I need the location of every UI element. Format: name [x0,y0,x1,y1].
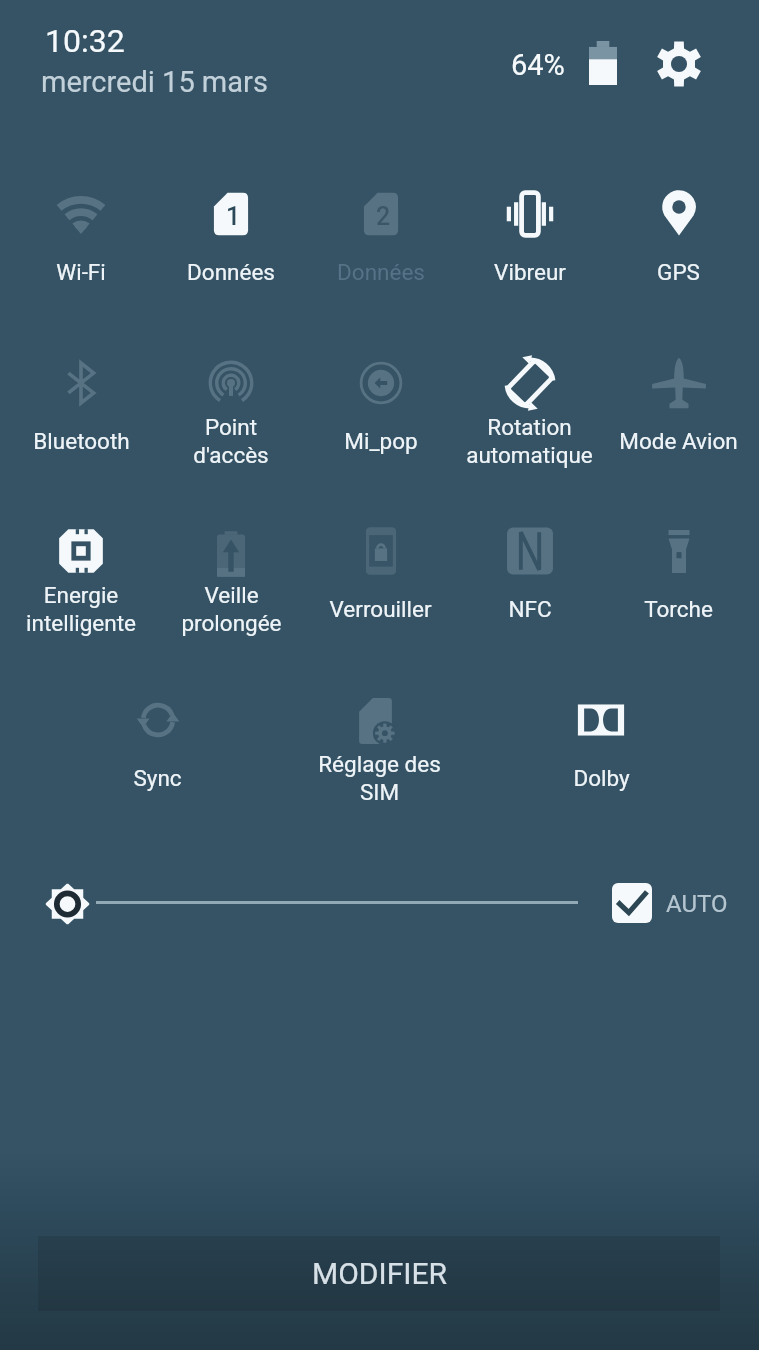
staticText: NFC [508,596,552,622]
staticText: 2 [376,202,391,231]
button[interactable]: Mi_pop [306,327,455,451]
button[interactable]: Torche [604,495,753,619]
staticText: Mode Avion [619,428,738,454]
staticText: Torche [644,596,713,622]
button[interactable]: Dolby [490,664,712,788]
button[interactable]: Point d'accès [156,327,306,451]
staticText: Rotation automatique [466,414,593,468]
button[interactable]: 1 [156,158,306,282]
staticText: mercredi 15 mars [41,65,268,99]
staticText: Mi_pop [344,428,418,454]
staticText: MODIFIER [312,1256,447,1291]
button[interactable]: Mode Avion [604,327,753,451]
staticText: 64% [511,48,565,82]
staticText: Données [187,259,275,285]
button[interactable]: Vibreur [455,158,604,282]
staticText: Sync [133,765,182,791]
button[interactable]: Wi-Fi [6,158,156,282]
staticText: Veille prolongée [181,582,282,636]
button[interactable]: Energie intelligente [6,495,156,619]
staticText: Vibreur [494,259,566,285]
staticText: 10:32 [45,22,125,60]
button[interactable]: Bluetooth [6,327,156,451]
staticText: Wi-Fi [56,259,106,285]
button[interactable]: GPS [604,158,753,282]
staticText: Dolby [573,765,630,791]
button[interactable]: Settings [650,35,708,93]
staticText: Verrouiller [329,596,432,622]
staticText: 1 [226,202,241,231]
button[interactable]: 2 [306,158,455,282]
staticText: AUTO [666,890,728,918]
staticText: Point d'accès [193,414,269,468]
staticText: Energie intelligente [26,582,136,636]
staticText: Données [337,259,425,285]
staticText: GPS [657,259,700,285]
button[interactable]: Réglage des SIM [268,664,490,788]
button[interactable]: AUTO [612,882,728,926]
button[interactable]: Veille prolongée [156,495,306,619]
button[interactable]: MODIFIER [38,1236,720,1311]
staticText: Réglage des SIM [318,751,441,805]
button[interactable]: Verrouiller [306,495,455,619]
button[interactable]: Rotation automatique [455,327,604,451]
staticText: Bluetooth [33,428,130,454]
button[interactable]: Sync [47,664,268,788]
button[interactable]: Brightness [46,880,92,926]
button[interactable]: NFC [455,495,604,619]
